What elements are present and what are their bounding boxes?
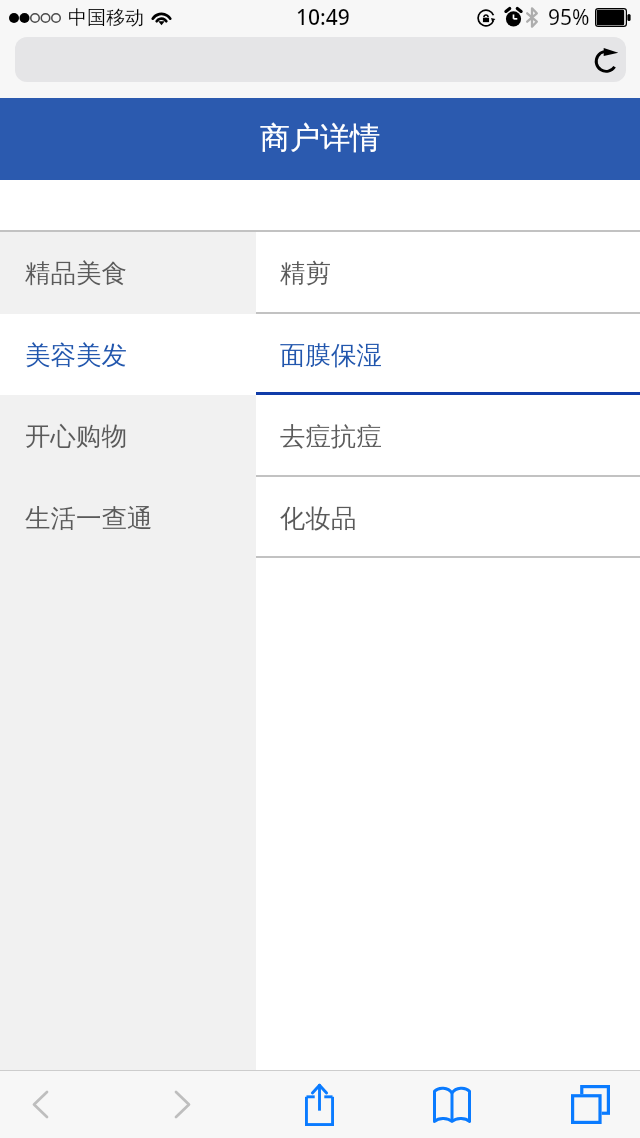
button[interactable]: Bookmarks — [392, 1071, 512, 1138]
button[interactable]: 生活一查通 — [0, 477, 256, 558]
button[interactable]: Forward — [142, 1071, 222, 1138]
staticText: 精剪 — [280, 257, 331, 289]
button[interactable]: 精品美食 — [0, 232, 256, 314]
button[interactable]: 精剪 — [256, 232, 640, 314]
button[interactable]: Back — [0, 1071, 80, 1138]
button[interactable]: 面膜保湿 — [256, 314, 640, 395]
button[interactable]: Share — [259, 1071, 379, 1138]
staticText: 精品美食 — [25, 257, 127, 289]
staticText: 化妆品 — [280, 502, 357, 534]
staticText: 10:49 — [296, 3, 350, 32]
staticText: 去痘抗痘 — [280, 420, 382, 452]
button[interactable]: 开心购物 — [0, 395, 256, 477]
staticText: 开心购物 — [25, 420, 127, 452]
staticText: 面膜保湿 — [280, 339, 382, 371]
button[interactable]: 美容美发 — [0, 314, 256, 395]
button[interactable]: 去痘抗痘 — [256, 395, 640, 477]
staticText: 95% — [548, 3, 590, 32]
staticText: 生活一查通 — [25, 502, 153, 534]
button[interactable]: Tabs — [530, 1071, 640, 1138]
staticText: 美容美发 — [25, 339, 127, 371]
button[interactable]: 化妆品 — [256, 477, 640, 558]
button[interactable]: Reload — [593, 46, 621, 74]
button[interactable]: Reload — [15, 37, 626, 82]
staticText: 商户详情 — [260, 119, 380, 157]
staticText: 中国移动 — [68, 6, 144, 30]
